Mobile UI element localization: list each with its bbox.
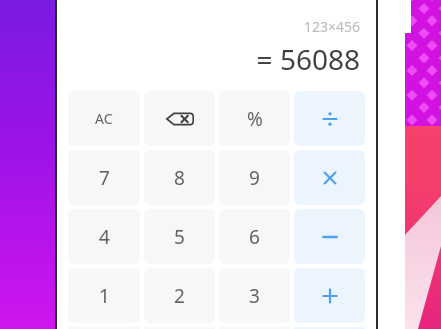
- staticText: 2: [174, 283, 185, 309]
- staticText: 123×456: [57, 17, 360, 36]
- staticText: 7: [99, 165, 110, 191]
- button[interactable]: 6: [219, 209, 290, 264]
- button[interactable]: 5: [144, 209, 215, 264]
- staticText: %: [247, 106, 263, 132]
- staticText: 5: [174, 224, 185, 250]
- staticText: 1: [99, 283, 110, 309]
- button[interactable]: 1: [68, 268, 140, 323]
- button[interactable]: 4: [68, 209, 140, 264]
- staticText: 9: [249, 165, 260, 191]
- button[interactable]: Backspace: [144, 91, 215, 146]
- button[interactable]: 3: [219, 268, 290, 323]
- staticText: = 56088: [57, 40, 360, 78]
- button[interactable]: −: [294, 209, 365, 264]
- staticText: 6: [249, 224, 260, 250]
- staticText: 3: [249, 283, 260, 309]
- button[interactable]: %: [219, 91, 290, 146]
- button[interactable]: 8: [144, 150, 215, 205]
- button[interactable]: ÷: [294, 91, 365, 146]
- staticText: 4: [99, 224, 110, 250]
- button[interactable]: ×: [294, 150, 365, 205]
- button[interactable]: 7: [68, 150, 140, 205]
- staticText: 8: [174, 165, 185, 191]
- button[interactable]: +: [294, 268, 365, 323]
- button[interactable]: AC: [68, 91, 140, 146]
- button[interactable]: 2: [144, 268, 215, 323]
- button[interactable]: 9: [219, 150, 290, 205]
- staticText: AC: [95, 109, 113, 128]
